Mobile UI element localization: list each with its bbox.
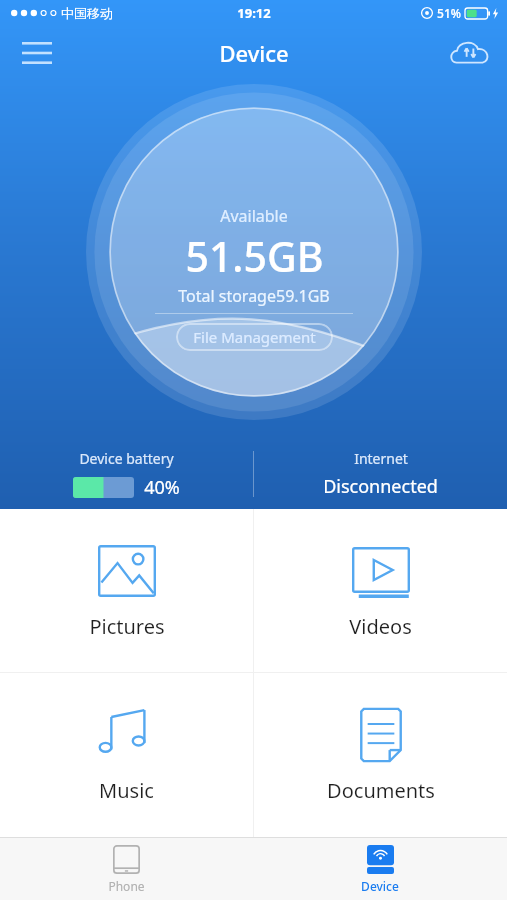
staticText: Documents: [327, 777, 435, 804]
staticText: Available: [220, 205, 288, 227]
staticText: Videos: [349, 613, 412, 640]
staticText: 51%: [437, 5, 461, 21]
staticText: Internet: [354, 449, 408, 468]
button[interactable]: Videos: [254, 509, 507, 672]
staticText: Disconnected: [323, 474, 438, 499]
button[interactable]: Music: [0, 673, 253, 837]
button[interactable]: Menu: [14, 30, 60, 76]
button[interactable]: File Management: [176, 323, 333, 351]
staticText: 51.5GB: [185, 228, 324, 284]
staticText: Device: [219, 38, 289, 68]
staticText: Device battery: [79, 449, 174, 468]
staticText: Pictures: [89, 613, 165, 640]
staticText: Device: [361, 878, 399, 894]
button[interactable]: Pictures: [0, 509, 253, 672]
staticText: File Management: [193, 327, 316, 347]
staticText: 40%: [144, 475, 180, 500]
button[interactable]: Device: [253, 838, 507, 900]
button[interactable]: Phone: [0, 838, 253, 900]
staticText: Total storage59.1GB: [178, 285, 330, 307]
staticText: Phone: [108, 878, 145, 894]
staticText: 中国移动: [61, 5, 113, 21]
button[interactable]: Documents: [254, 673, 507, 837]
staticText: Music: [99, 777, 154, 804]
staticText: 19:12: [237, 4, 271, 22]
button[interactable]: Cloud sync: [447, 30, 493, 76]
